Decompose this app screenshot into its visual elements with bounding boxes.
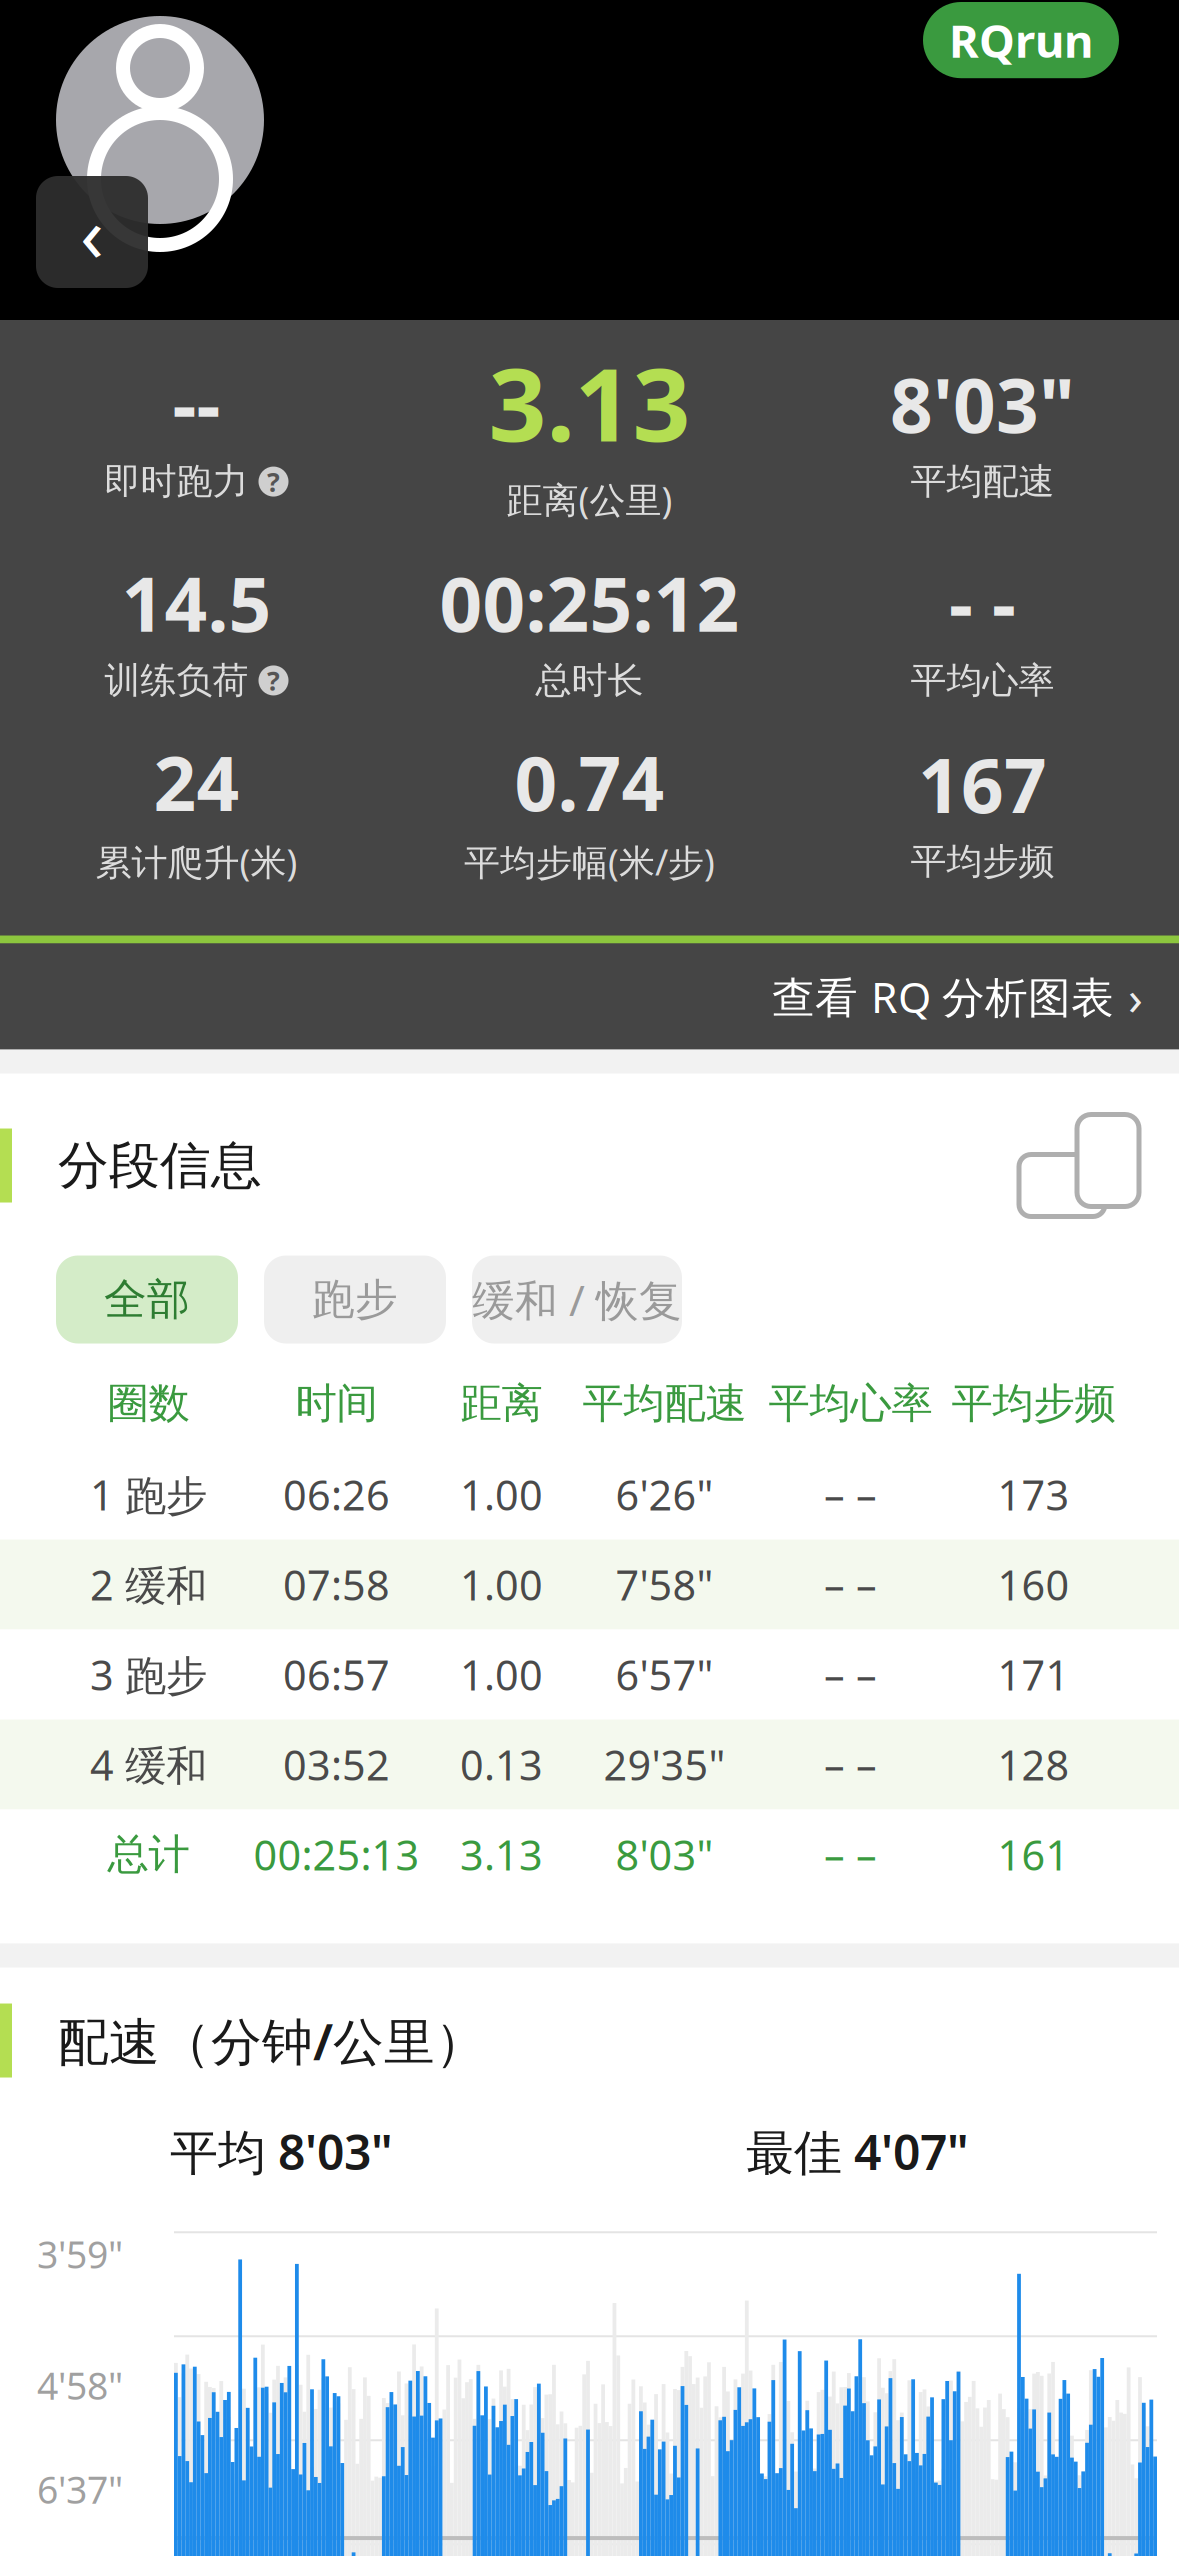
staticText: 分段信息 [58,1134,262,1197]
staticText: – – [824,1737,877,1792]
button[interactable]: 查看 RQ 分析图表 [0,943,1179,1049]
staticText: 00:25:13 [253,1827,419,1882]
staticText: 7'58" [615,1557,713,1612]
staticText: 训练负荷 [104,658,248,702]
button[interactable]: RQrun [923,2,1119,78]
button[interactable]: Back [36,176,148,288]
staticText: 8'03" [890,354,1075,453]
staticText: 配速（分钟/公里） [58,2007,486,2074]
staticText: 平均步频 [951,1378,1115,1429]
button[interactable]: 全部 [56,1255,238,1343]
staticText: › [1128,965,1143,1028]
staticText: 平均心率 [910,658,1054,702]
staticText: 173 [997,1467,1069,1522]
staticText: 慢摇者 [190,146,334,205]
staticText: 3'59" [37,2229,123,2279]
staticText: 全部 [104,1273,190,1326]
staticText: RQrun [949,10,1093,70]
staticText: 167 [918,734,1047,834]
staticText: 平均 8'03" [170,2119,393,2183]
staticText: 累计爬升(米) [95,838,297,885]
staticText: 07:58 [283,1557,390,1612]
staticText: 6'37" [37,2464,123,2514]
staticText: 3.13 [488,335,690,469]
staticText: 总时长 [535,658,643,702]
staticText: 平均配速 [910,459,1054,504]
staticText: 时间 [295,1378,377,1429]
staticText: ➤ [217,39,246,79]
button[interactable]: Compare laps [1015,1109,1143,1221]
staticText: ▮▮▮▮ [951,44,1011,74]
staticText: 161 [997,1827,1069,1882]
staticText: 8'03" [615,1827,713,1882]
staticText: ‹ [80,181,104,283]
staticText: 171 [997,1647,1069,1702]
staticText: 圈数 [107,1378,189,1429]
staticText: 06:57 [283,1647,390,1702]
staticText: ? [267,663,280,698]
staticText: 0.74 [514,733,664,832]
staticText: – – [824,1647,877,1702]
staticText: 29'35" [603,1737,725,1792]
button[interactable]: 缓和 / 恢复 [472,1255,682,1343]
staticText: 6'57" [615,1647,713,1702]
staticText: 4'58" [37,2360,123,2410]
staticText: 6'26" [615,1467,713,1522]
staticText: 总计 [107,1829,189,1880]
staticText: 23:21 [96,29,213,89]
staticText: 平均步频 [910,839,1054,884]
staticText: 即时跑力 [104,459,248,504]
staticText: ? [267,464,280,499]
staticText: 128 [997,1737,1069,1792]
staticText: 晚上跑步 [190,215,338,261]
staticText: 1.00 [460,1557,543,1612]
staticText: 平均心率 [768,1378,932,1429]
staticText: – – [824,1557,877,1612]
staticText: 54 [1093,36,1133,82]
staticText: 06:26 [283,1467,390,1522]
staticText: 2 缓和 [90,1557,207,1612]
staticText: 4 缓和 [90,1737,207,1792]
staticText: – – [824,1467,877,1522]
staticText: 1.00 [460,1467,543,1522]
staticText: 距离 [460,1378,542,1429]
staticText: 0.13 [460,1737,543,1792]
staticText: 3.13 [460,1827,543,1882]
staticText: 距离(公里) [506,475,672,523]
staticText: 平均配速 [582,1378,746,1429]
staticText: 03:52 [283,1737,390,1792]
staticText: 160 [997,1557,1069,1612]
staticText: 1 跑步 [90,1467,207,1522]
staticText: – – [824,1827,877,1882]
staticText: - - [949,553,1016,652]
staticText: 00:25:12 [439,553,739,652]
staticText: 5G [1021,32,1073,85]
staticText: 缓和 / 恢复 [472,1271,682,1328]
staticText: 1.00 [460,1647,543,1702]
staticText: 查看 RQ 分析图表 [772,968,1114,1025]
staticText: 跑步 [312,1273,398,1326]
staticText: 最佳 4'07" [746,2119,969,2183]
staticText: -- [172,354,220,453]
staticText: 14.5 [121,553,271,652]
button[interactable]: 跑步 [264,1255,446,1343]
staticText: 3 跑步 [90,1647,207,1702]
staticText: 24 [153,733,239,832]
staticText: 平均步幅(米/步) [464,838,715,885]
